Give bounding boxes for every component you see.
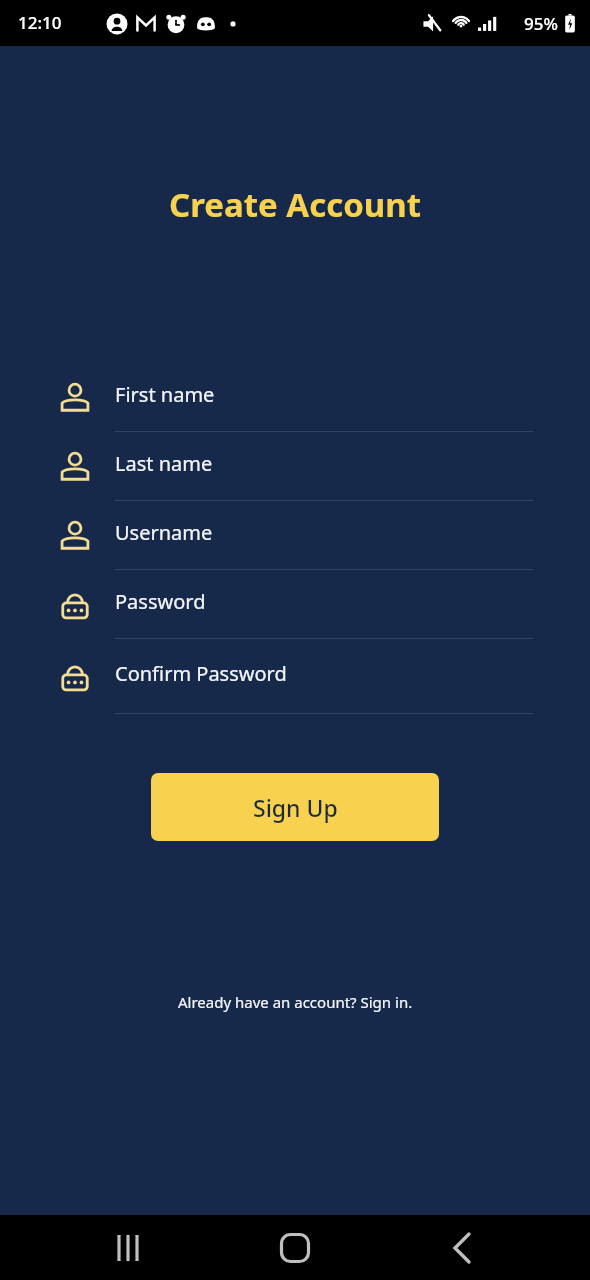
button[interactable]: Already have an account? Sign in.: [170, 988, 421, 1016]
staticText: Confirm Password: [115, 660, 287, 687]
other: Name field icon: [58, 381, 92, 415]
staticText: Username: [115, 519, 213, 546]
staticText: Already have an account? Sign in.: [178, 992, 413, 1012]
other: Name field icon: [58, 519, 92, 553]
button[interactable]: Name field icon: [0, 501, 590, 570]
button[interactable]: Password field icon: [0, 570, 590, 639]
button[interactable]: Password field icon: [0, 639, 590, 714]
button[interactable]: Recent apps: [98, 1218, 158, 1278]
other: Password field icon: [58, 588, 92, 622]
other: Name field icon: [58, 450, 92, 484]
staticText: Last name: [115, 450, 213, 477]
button[interactable]: Name field icon: [0, 432, 590, 501]
staticText: Password: [115, 588, 206, 615]
staticText: Sign Up: [253, 792, 338, 823]
staticText: 12:10: [18, 11, 62, 34]
button[interactable]: Home: [265, 1218, 325, 1278]
staticText: 95%: [524, 12, 558, 35]
button[interactable]: Name field icon: [0, 363, 590, 432]
button[interactable]: Back: [432, 1218, 492, 1278]
staticText: Create Account: [0, 182, 590, 227]
staticText: First name: [115, 381, 215, 408]
button[interactable]: Sign Up: [151, 773, 439, 841]
other: Password field icon: [58, 660, 92, 694]
